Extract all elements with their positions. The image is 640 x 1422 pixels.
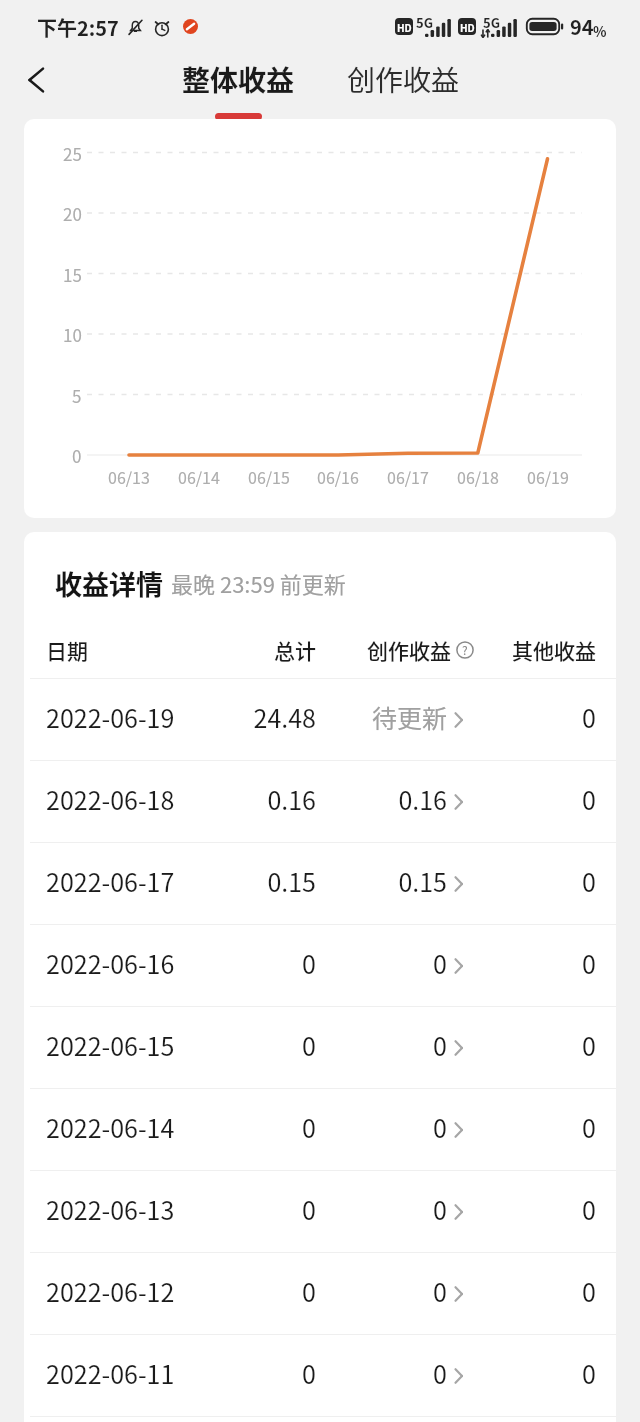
staticText: 最晚 23:59 前更新 (171, 567, 346, 599)
staticText: 0 (396, 1273, 596, 1309)
staticText: HD (460, 20, 475, 34)
staticText: 0.16 (247, 781, 447, 817)
staticText: 创作收益 (367, 635, 451, 665)
staticText: 0 (247, 1355, 447, 1391)
button[interactable]: Back (0, 55, 70, 119)
staticText: ? (462, 641, 468, 658)
staticText: 0.15 (247, 863, 447, 899)
staticText: 0 (396, 781, 596, 817)
staticText: 2022-06-15 (46, 1027, 175, 1063)
staticText: 0.15 (116, 863, 316, 899)
staticText: 待更新 (247, 699, 447, 735)
button[interactable]: 整体收益 (174, 55, 302, 119)
staticText: 0 (116, 1027, 316, 1063)
button[interactable]: 创作收益 (339, 55, 467, 119)
staticText: 2022-06-13 (46, 1191, 175, 1227)
button[interactable]: 2022-06-14 (24, 1089, 616, 1170)
staticText: 20 (63, 201, 82, 226)
button[interactable]: 2022-06-15 (24, 1007, 616, 1088)
staticText: HD (397, 20, 412, 34)
staticText: 24.48 (116, 699, 316, 735)
staticText: 0 (396, 1027, 596, 1063)
staticText: 06/19 (527, 465, 569, 488)
staticText: 06/13 (108, 465, 150, 488)
staticText: 收益详情 (55, 564, 163, 603)
button[interactable]: 2022-06-16 (24, 925, 616, 1006)
staticText: 2022-06-17 (46, 863, 175, 899)
staticText: 0 (247, 1109, 447, 1145)
staticText: 0 (116, 1191, 316, 1227)
button[interactable]: 2022-06-11 (24, 1335, 616, 1416)
staticText: 2022-06-19 (46, 699, 175, 735)
staticText: 其他收益 (396, 635, 596, 665)
staticText: 0 (396, 1109, 596, 1145)
staticText: 0 (247, 945, 447, 981)
staticText: 0 (116, 1273, 316, 1309)
staticText: 0 (116, 1109, 316, 1145)
staticText: 5G (483, 13, 500, 32)
staticText: 0 (396, 1355, 596, 1391)
staticText: 0 (396, 699, 596, 735)
staticText: 06/17 (387, 465, 429, 488)
staticText: 0.16 (116, 781, 316, 817)
staticText: 总计 (116, 635, 316, 665)
staticText: 15 (63, 262, 82, 287)
button[interactable]: 2022-06-12 (24, 1253, 616, 1334)
staticText: 5G (416, 13, 433, 32)
staticText: 0 (247, 1027, 447, 1063)
staticText: 0 (396, 863, 596, 899)
button[interactable]: 2022-06-19 (24, 679, 616, 760)
staticText: 创作收益 (347, 59, 460, 100)
staticText: 06/15 (248, 465, 290, 488)
staticText: 0 (396, 945, 596, 981)
staticText: 0 (116, 945, 316, 981)
staticText: 94 (570, 12, 594, 41)
staticText: 06/18 (457, 465, 499, 488)
staticText: 0 (72, 443, 82, 468)
staticText: 06/16 (317, 465, 359, 488)
staticText: 0 (116, 1355, 316, 1391)
staticText: 日期 (46, 635, 88, 665)
staticText: 0 (247, 1191, 447, 1227)
staticText: 下午2:57 (37, 13, 119, 42)
staticText: 0 (247, 1273, 447, 1309)
staticText: 25 (63, 141, 82, 166)
staticText: 2022-06-12 (46, 1273, 175, 1309)
staticText: % (593, 21, 607, 41)
button[interactable]: 2022-06-13 (24, 1171, 616, 1252)
staticText: 2022-06-16 (46, 945, 175, 981)
staticText: 整体收益 (182, 59, 295, 100)
staticText: 5 (72, 383, 82, 408)
staticText: 2022-06-11 (46, 1355, 175, 1391)
button[interactable]: 2022-06-18 (24, 761, 616, 842)
button[interactable]: 2022-06-17 (24, 843, 616, 924)
staticText: 2022-06-14 (46, 1109, 175, 1145)
staticText: 06/14 (178, 465, 220, 488)
staticText: 0 (396, 1191, 596, 1227)
staticText: 2022-06-18 (46, 781, 175, 817)
staticText: 10 (63, 322, 82, 347)
